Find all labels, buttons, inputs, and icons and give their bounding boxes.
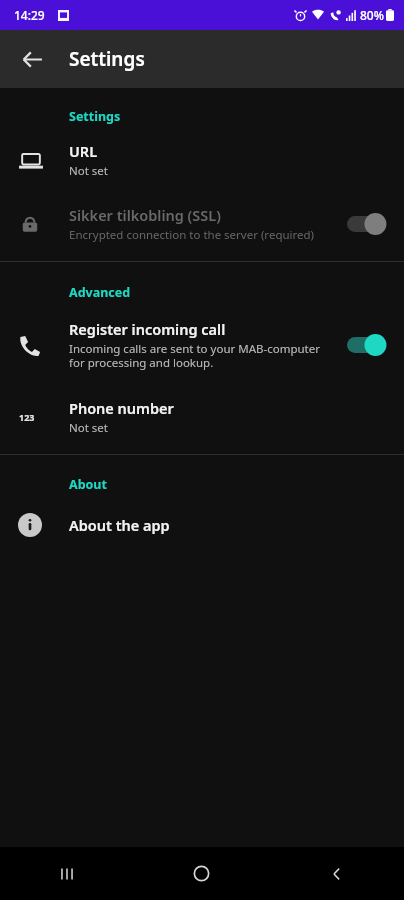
staticText: Settings — [69, 108, 121, 125]
staticText: Encrypted connection to the server (requ… — [69, 227, 315, 243]
staticText: Advanced — [69, 284, 131, 301]
button[interactable]: Home — [134, 847, 269, 900]
button[interactable] — [347, 213, 387, 235]
button[interactable]: Sikker tilkobling (SSL) — [0, 201, 404, 247]
staticText: Register incoming call — [69, 319, 226, 339]
button[interactable]: URL — [0, 137, 404, 183]
button[interactable]: Back — [269, 847, 404, 900]
button[interactable] — [347, 334, 387, 356]
button[interactable]: Recents — [0, 847, 134, 900]
staticText: 123 — [19, 411, 35, 423]
staticText: 80% — [360, 7, 384, 23]
button[interactable]: Register incoming call — [0, 315, 404, 374]
staticText: Not set — [69, 163, 108, 179]
button[interactable]: Back — [10, 37, 54, 81]
button[interactable]: About the app — [0, 509, 404, 541]
button[interactable]: 123 — [0, 394, 404, 440]
staticText: URL — [69, 141, 98, 161]
staticText: 14:29 — [14, 7, 45, 23]
staticText: Sikker tilkobling (SSL) — [69, 205, 221, 225]
staticText: Not set — [69, 420, 108, 436]
staticText: Settings — [69, 46, 145, 72]
staticText: About the app — [69, 515, 170, 535]
staticText: About — [69, 476, 107, 493]
staticText: Incoming calls are sent to your MAB-comp… — [69, 341, 336, 370]
staticText: Phone number — [69, 398, 174, 418]
